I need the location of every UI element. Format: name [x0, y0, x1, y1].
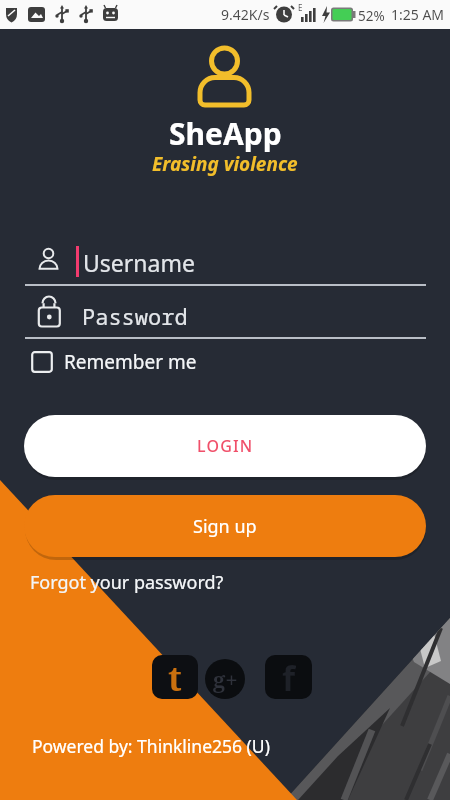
staticText: Username: [83, 247, 195, 278]
staticText: Sign up: [193, 514, 257, 539]
button[interactable]: Remember me: [25, 345, 225, 379]
staticText: g+: [213, 664, 238, 694]
button[interactable]: Sign up: [24, 495, 426, 557]
staticText: 9.42K/s: [221, 5, 270, 24]
staticText: LOGIN: [197, 435, 254, 457]
button[interactable]: g+: [205, 659, 245, 699]
staticText: E: [298, 2, 303, 13]
staticText: Powered by: Thinkline256 (U): [32, 734, 270, 758]
button[interactable]: t: [152, 655, 198, 699]
staticText: 1:25 AM: [391, 5, 445, 24]
staticText: 52%: [358, 7, 385, 25]
staticText: t: [168, 655, 182, 699]
staticText: Remember me: [64, 349, 197, 375]
button[interactable]: f: [265, 655, 312, 699]
button[interactable]: [25, 293, 426, 339]
button[interactable]: [25, 240, 426, 286]
staticText: Erasing violence: [152, 151, 298, 177]
button[interactable]: Forgot your password?: [30, 570, 224, 595]
staticText: SheApp: [169, 113, 282, 154]
staticText: Password: [82, 301, 188, 331]
staticText: f: [282, 655, 296, 699]
button[interactable]: LOGIN: [24, 415, 426, 477]
